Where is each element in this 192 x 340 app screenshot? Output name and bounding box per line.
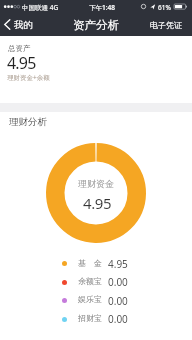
staticText: 0.00 (108, 312, 128, 326)
staticText: 余额宝 (78, 276, 102, 286)
staticText: 总资产 (8, 44, 31, 53)
staticText: 娱乐宝 (78, 294, 102, 304)
staticText: 基 金 (78, 257, 102, 268)
button[interactable]: 我的 (3, 13, 33, 36)
staticText: 中国联通 4G (22, 3, 59, 12)
staticText: 理财资金+余额 (7, 73, 50, 82)
staticText: 4.95 (108, 257, 128, 271)
staticText: 4.95 (7, 52, 36, 74)
staticText: 资产分析 (73, 18, 119, 32)
staticText: 61% (158, 3, 171, 12)
staticText: 下午1:48 (89, 3, 115, 12)
staticText: 0.00 (108, 294, 128, 308)
staticText: 理财资金 (78, 178, 114, 189)
button[interactable]: 电子凭证 (145, 13, 182, 36)
staticText: 招财宝 (78, 313, 102, 323)
button[interactable] (60, 311, 130, 327)
staticText: 我的 (14, 19, 33, 31)
button[interactable] (60, 256, 130, 272)
staticText: 电子凭证 (150, 20, 182, 30)
button[interactable] (60, 293, 130, 309)
staticText: 4.95 (83, 193, 112, 213)
staticText: 0.00 (108, 275, 128, 289)
staticText: 理财分析 (9, 116, 47, 128)
button[interactable] (60, 274, 130, 290)
